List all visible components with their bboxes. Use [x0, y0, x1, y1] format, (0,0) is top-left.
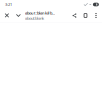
button[interactable]: Share	[69, 9, 80, 22]
staticText: 3:21	[5, 2, 12, 7]
button[interactable]: Close	[1, 9, 13, 22]
button[interactable]: Switch tabs	[80, 9, 91, 22]
button[interactable]: Page info	[13, 9, 24, 22]
staticText: about:blank	[25, 15, 44, 21]
button[interactable]: More options	[91, 9, 101, 22]
staticText: about:blank#b…	[25, 10, 55, 15]
